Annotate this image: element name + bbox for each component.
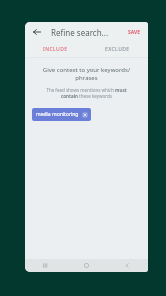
button[interactable]: Home bbox=[66, 259, 107, 272]
staticText: media monitoring bbox=[36, 111, 79, 118]
button[interactable]: Back bbox=[107, 259, 148, 272]
other: Remove media monitoring bbox=[82, 112, 88, 118]
button[interactable]: Back bbox=[30, 25, 44, 39]
staticText: The feed shows mentions which must conta… bbox=[38, 87, 135, 99]
staticText: Refine search... bbox=[51, 27, 109, 38]
button[interactable]: Recents bbox=[25, 259, 66, 272]
staticText: Give context to your keywords/phrases bbox=[32, 66, 141, 82]
staticText: SAVE bbox=[128, 29, 141, 36]
button[interactable]: media monitoring bbox=[32, 108, 91, 121]
button[interactable]: SAVE bbox=[126, 27, 143, 38]
staticText: EXCLUDE bbox=[105, 46, 130, 53]
staticText: INCLUDE bbox=[43, 46, 68, 53]
button[interactable]: INCLUDE bbox=[25, 42, 86, 57]
button[interactable]: EXCLUDE bbox=[86, 42, 148, 57]
